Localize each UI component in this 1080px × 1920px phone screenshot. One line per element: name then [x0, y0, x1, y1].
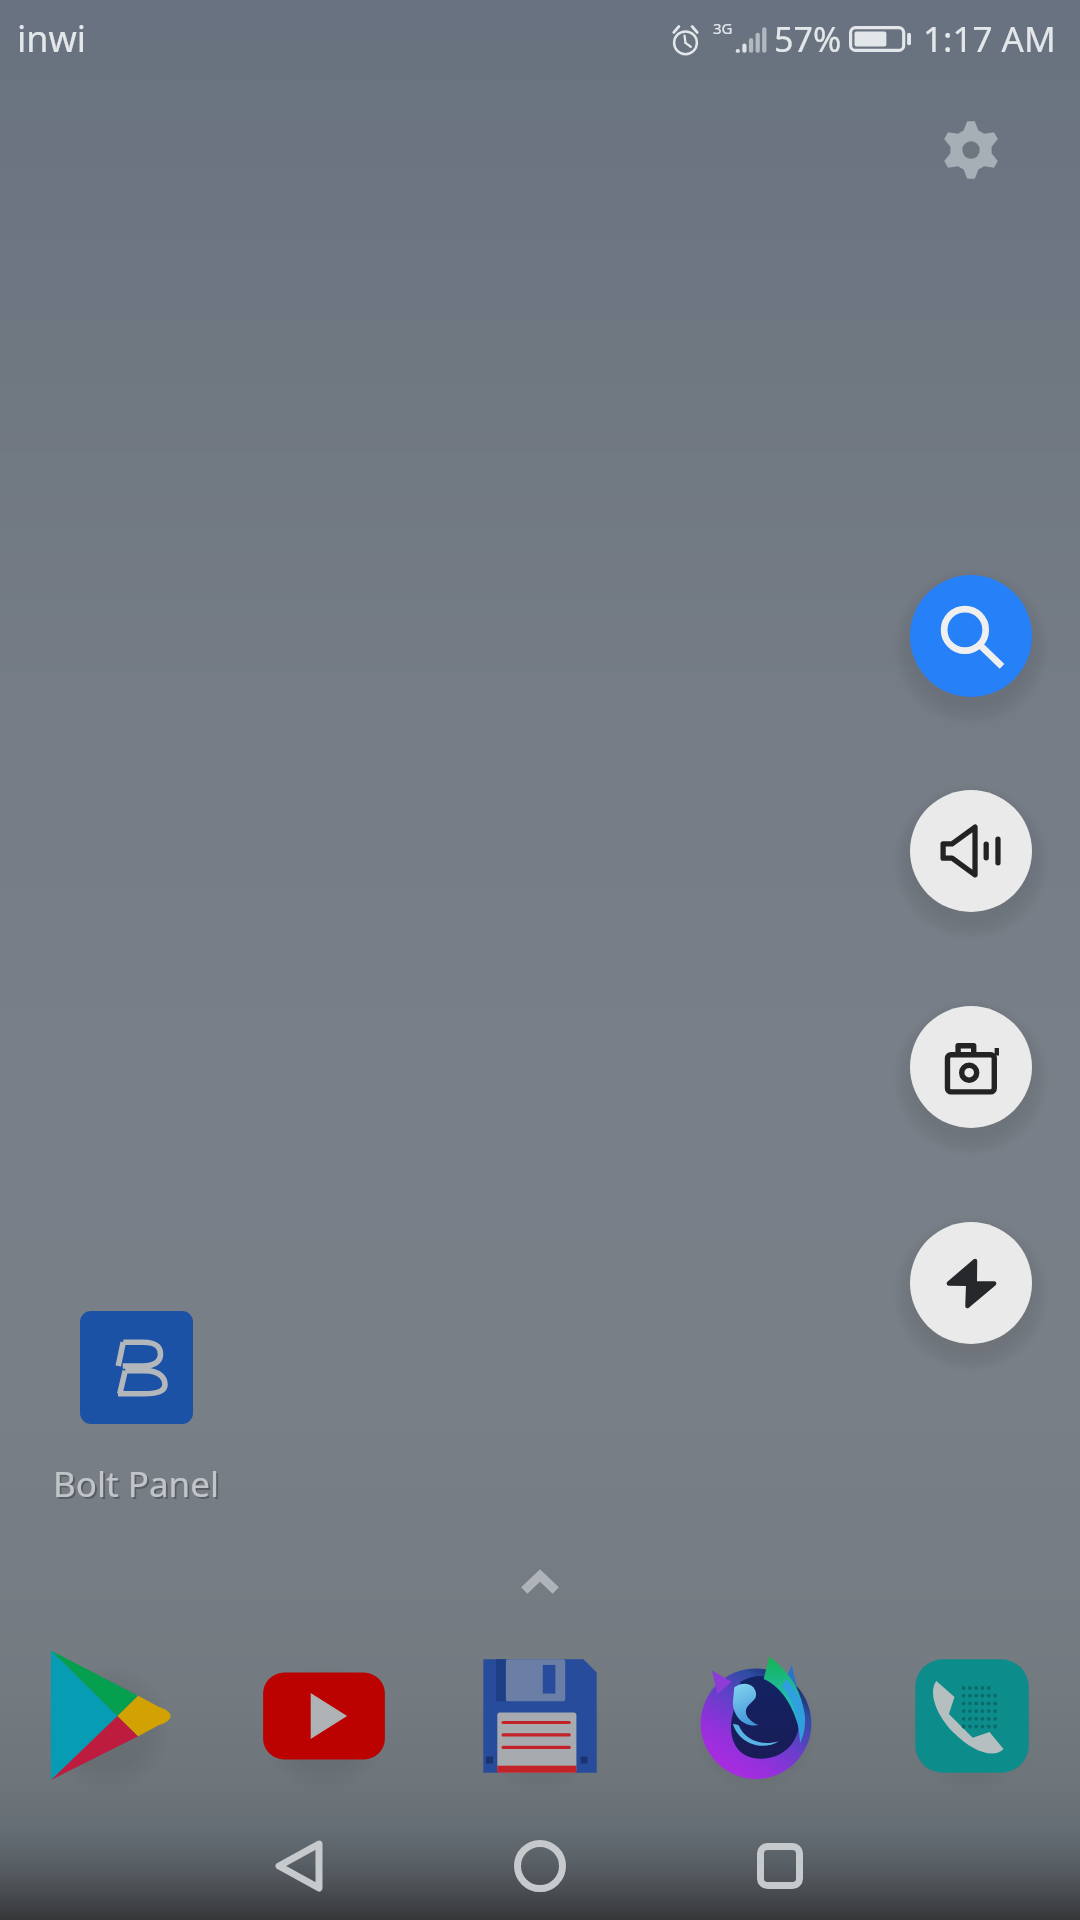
button[interactable]: Settings — [911, 90, 1031, 210]
staticText: Bolt Panel — [53, 1460, 219, 1508]
staticText: Bolt Panel — [55, 1462, 221, 1510]
staticText: 1:17 AM — [923, 15, 1056, 63]
button[interactable]: Volume — [910, 790, 1032, 912]
button[interactable]: Play Store — [38, 1646, 178, 1786]
staticText: inwi — [17, 14, 87, 63]
staticText: 3G — [713, 18, 733, 38]
button[interactable]: Bolt Panel — [25, 1311, 247, 1508]
button[interactable]: Search — [910, 575, 1032, 697]
button[interactable]: Back — [239, 1816, 359, 1916]
button[interactable]: YouTube — [254, 1646, 394, 1786]
button[interactable]: Flash — [910, 1222, 1032, 1344]
staticText: 57% — [774, 16, 842, 62]
button[interactable]: Open app drawer — [490, 1541, 590, 1621]
button[interactable]: Files — [470, 1646, 610, 1786]
button[interactable]: Phone — [902, 1646, 1042, 1786]
button[interactable]: Home — [480, 1816, 600, 1916]
button[interactable]: Camera — [910, 1006, 1032, 1128]
button[interactable]: Recents — [720, 1816, 840, 1916]
button[interactable]: Firefox — [686, 1646, 826, 1786]
